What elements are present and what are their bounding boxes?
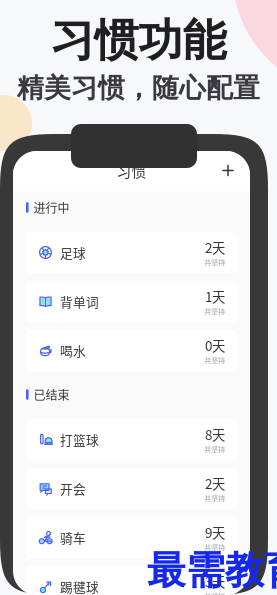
staticText: 进行中 [34, 199, 70, 216]
button[interactable]: Add habit [217, 159, 239, 181]
staticText: 最需教育 [147, 546, 277, 595]
button[interactable]: 骑车 [26, 516, 237, 565]
staticText: 3天 [205, 571, 225, 591]
staticText: 精美习惯，随心配置 [17, 71, 260, 105]
staticText: 喝水 [60, 341, 86, 360]
staticText: 踢毽球 [60, 577, 99, 595]
staticText: 共坚持 [204, 257, 225, 267]
staticText: 打篮球 [60, 430, 99, 449]
staticText: 背单词 [60, 292, 99, 311]
staticText: 开会 [60, 479, 86, 498]
staticText: 共坚持 [204, 306, 225, 316]
staticText: 9天 [205, 522, 225, 542]
staticText: 2天 [205, 473, 225, 493]
staticText: 共坚持 [204, 591, 225, 595]
staticText: 已结束 [34, 386, 70, 403]
staticText: 0天 [205, 335, 225, 355]
button[interactable]: 足球 [26, 231, 237, 280]
staticText: 共坚持 [204, 444, 225, 454]
button[interactable]: 踢毽球 [26, 565, 237, 595]
staticText: 习惯 [116, 160, 146, 181]
button[interactable]: 背单词 [26, 280, 237, 329]
staticText: 8天 [205, 424, 225, 444]
staticText: 习惯功能 [50, 13, 226, 68]
button[interactable]: 打篮球 [26, 418, 237, 467]
staticText: 共坚持 [204, 355, 225, 365]
button[interactable]: 开会 [26, 467, 237, 516]
staticText: 足球 [60, 243, 86, 262]
staticText: 2天 [205, 237, 225, 257]
staticText: 骑车 [60, 528, 86, 547]
staticText: 1天 [205, 286, 225, 306]
staticText: 共坚持 [204, 542, 225, 552]
staticText: 共坚持 [204, 493, 225, 503]
button[interactable]: 喝水 [26, 329, 237, 378]
